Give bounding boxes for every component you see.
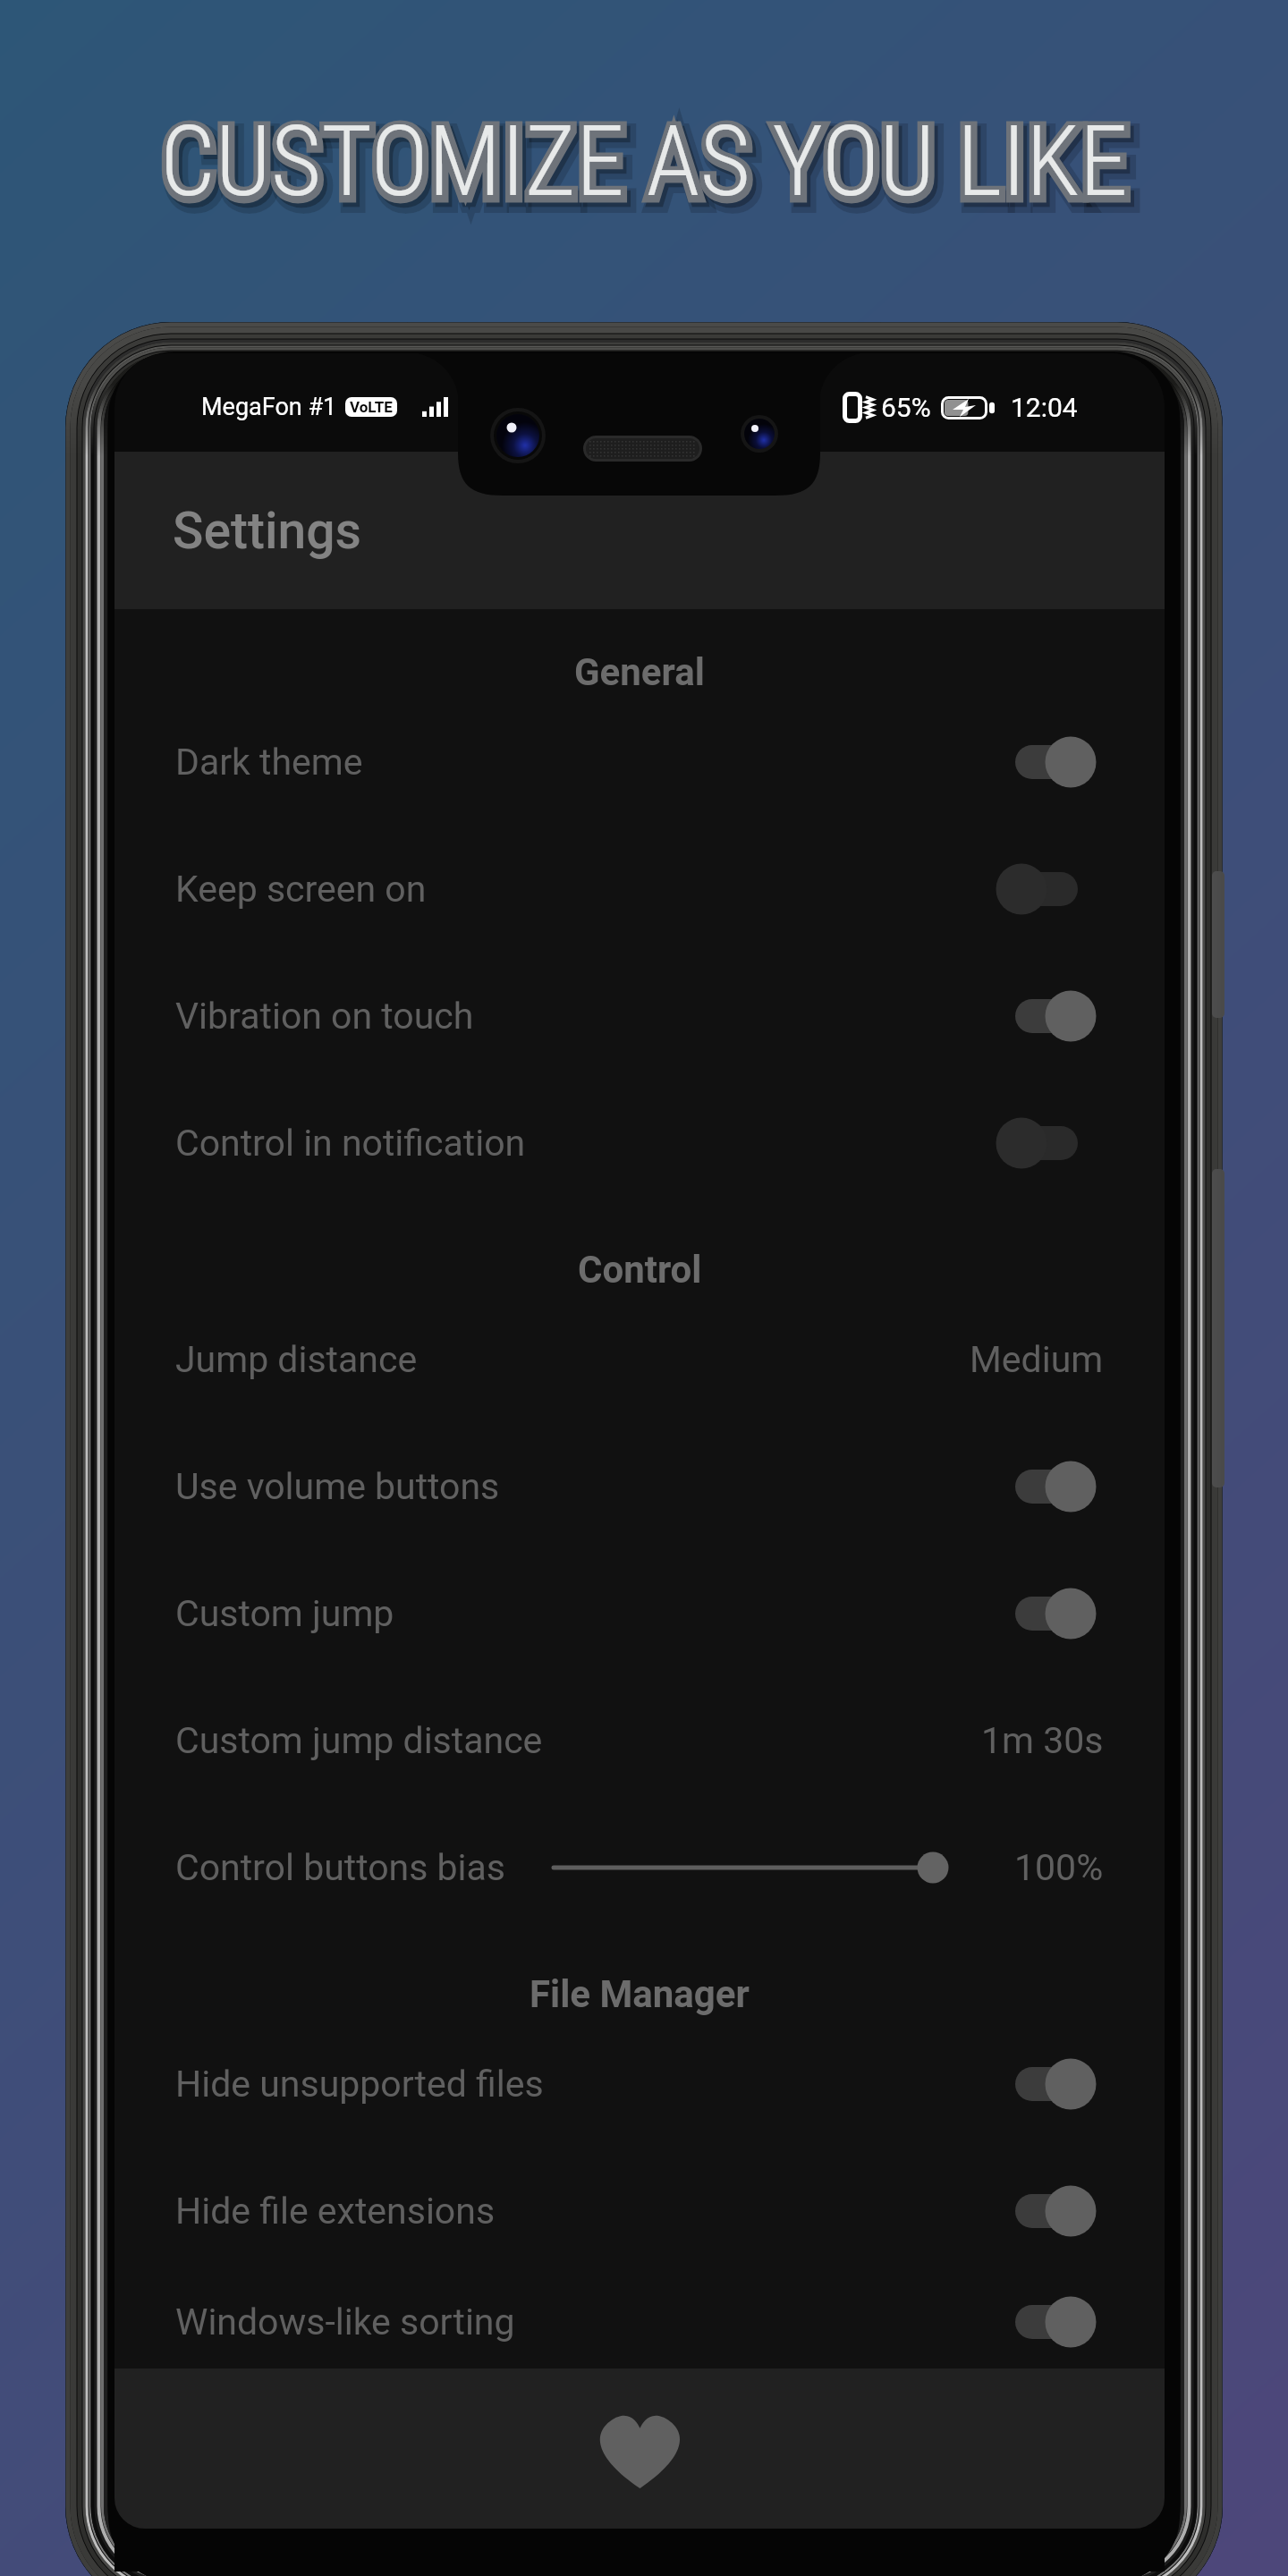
button[interactable]: Vibration on touch: [114, 953, 1165, 1080]
staticText: CUSTOMIZE AS YOU LIKE: [165, 111, 1133, 225]
staticText: CUSTOMIZE AS YOU LIKE: [161, 106, 1130, 221]
staticText: Settings: [173, 501, 362, 561]
staticText: 65%: [881, 392, 931, 423]
staticText: 1m 30s: [981, 1719, 1104, 1762]
staticText: 12:04: [1011, 392, 1078, 423]
staticText: Custom jump distance: [175, 1719, 981, 1762]
staticText: Windows-like sorting: [175, 2301, 996, 2343]
button[interactable]: Favorite: [590, 2402, 689, 2501]
button[interactable]: Control buttons bias: [114, 1804, 1165, 1931]
button[interactable]: Jump distance: [114, 1296, 1165, 1423]
staticText: Dark theme: [175, 741, 996, 784]
staticText: Hide unsupported files: [175, 2063, 996, 2106]
staticText: MegaFon #1: [201, 393, 337, 421]
staticText: Medium: [970, 1338, 1104, 1381]
button[interactable]: Control in notification: [114, 1080, 1165, 1207]
button[interactable]: Dark theme: [114, 699, 1165, 826]
button[interactable]: Custom jump distance: [114, 1677, 1165, 1804]
staticText: Control in notification: [175, 1122, 996, 1165]
staticText: CUSTOMIZE AS YOU LIKE: [160, 105, 1129, 219]
staticText: General: [574, 650, 705, 694]
staticText: Use volume buttons: [175, 1465, 996, 1508]
staticText: Control buttons bias: [175, 1846, 505, 1889]
staticText: Custom jump: [175, 1592, 996, 1635]
staticText: CUSTOMIZE AS YOU LIKE: [166, 113, 1135, 227]
button[interactable]: Use volume buttons: [114, 1423, 1165, 1550]
button[interactable]: Keep screen on: [114, 826, 1165, 953]
button[interactable]: Windows-like sorting: [114, 2275, 1165, 2368]
button[interactable]: Hide unsupported files: [114, 2021, 1165, 2148]
staticText: VoLTE: [350, 398, 393, 416]
button[interactable]: Custom jump: [114, 1550, 1165, 1677]
staticText: Keep screen on: [175, 868, 996, 911]
staticText: Vibration on touch: [175, 995, 996, 1038]
staticText: File Manager: [530, 1972, 750, 2016]
staticText: Hide file extensions: [175, 2190, 996, 2233]
staticText: 100%: [1014, 1846, 1104, 1889]
staticText: Jump distance: [175, 1338, 970, 1381]
button[interactable]: Hide file extensions: [114, 2148, 1165, 2275]
staticText: Control: [578, 1248, 702, 1292]
